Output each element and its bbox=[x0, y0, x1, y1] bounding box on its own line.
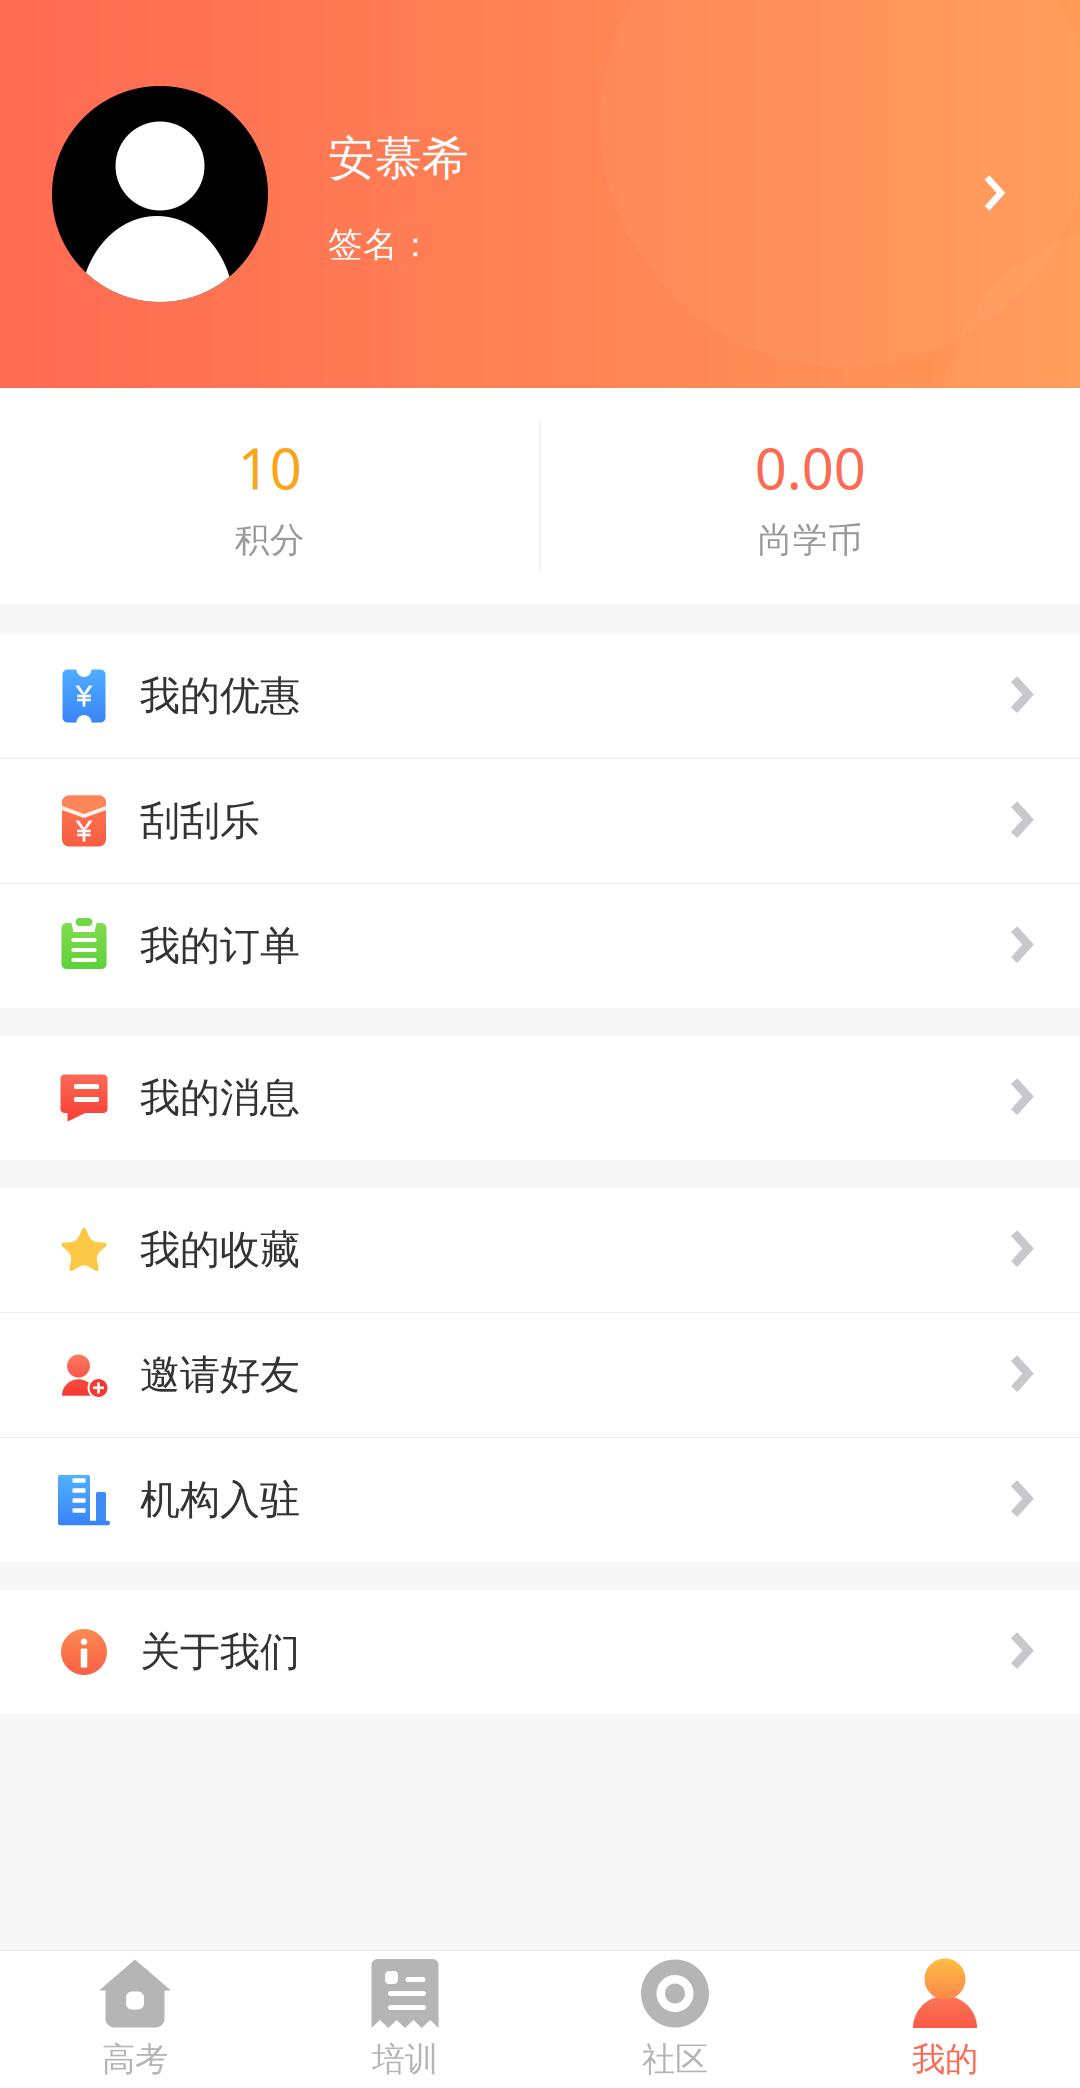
staticText: 我的订单 bbox=[140, 921, 300, 970]
staticText: 机构入驻 bbox=[140, 1475, 300, 1524]
button[interactable]: 0.00 bbox=[540, 388, 1080, 604]
button[interactable]: 邀请好友 bbox=[0, 1313, 1080, 1437]
button[interactable]: 我的 bbox=[810, 1951, 1080, 2088]
button[interactable]: 高考 bbox=[0, 1951, 270, 2088]
staticText: 高考 bbox=[102, 2039, 168, 2080]
staticText: 邀请好友 bbox=[140, 1350, 300, 1399]
staticText: 安慕希 bbox=[328, 130, 469, 187]
button[interactable]: 刮刮乐 bbox=[0, 759, 1080, 883]
button[interactable]: 我的优惠 bbox=[0, 634, 1080, 758]
staticText: 我的收藏 bbox=[140, 1225, 300, 1274]
staticText: 社区 bbox=[642, 2039, 708, 2080]
staticText: 我的消息 bbox=[140, 1073, 300, 1122]
button[interactable]: 关于我们 bbox=[0, 1590, 1080, 1714]
button[interactable]: 安慕希 bbox=[0, 0, 1080, 388]
button[interactable]: 10 bbox=[0, 388, 539, 604]
staticText: 我的 bbox=[912, 2039, 978, 2080]
staticText: 10 bbox=[238, 430, 302, 505]
staticText: 签名： bbox=[328, 223, 433, 266]
button[interactable]: 我的收藏 bbox=[0, 1188, 1080, 1312]
button[interactable]: 社区 bbox=[540, 1951, 810, 2088]
button[interactable]: 我的消息 bbox=[0, 1036, 1080, 1160]
staticText: 关于我们 bbox=[140, 1627, 300, 1676]
staticText: 我的优惠 bbox=[140, 671, 300, 720]
staticText: 积分 bbox=[235, 519, 305, 561]
staticText: 0.00 bbox=[755, 430, 866, 505]
button[interactable]: 培训 bbox=[270, 1951, 540, 2088]
button[interactable]: 机构入驻 bbox=[0, 1438, 1080, 1562]
button[interactable]: 我的订单 bbox=[0, 884, 1080, 1008]
staticText: 刮刮乐 bbox=[140, 796, 260, 845]
staticText: 尚学币 bbox=[758, 519, 863, 561]
staticText: 培训 bbox=[372, 2039, 438, 2080]
